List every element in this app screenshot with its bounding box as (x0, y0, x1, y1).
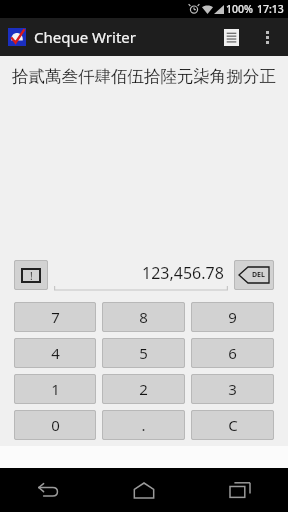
button[interactable]: 3 (191, 374, 274, 404)
staticText: 5 (139, 343, 148, 363)
staticText: 17:13 (257, 2, 284, 16)
staticText: 7 (51, 307, 60, 327)
button[interactable]: 4 (14, 338, 96, 368)
button[interactable]: More options (250, 20, 284, 54)
button[interactable]: 0 (14, 410, 96, 440)
button[interactable]: Recent apps (192, 468, 288, 512)
staticText: 3 (228, 379, 237, 399)
staticText: 1 (51, 379, 60, 399)
staticText: C (228, 415, 238, 435)
staticText: 9 (228, 307, 237, 327)
staticText: 4 (51, 343, 60, 363)
staticText: DEL (252, 270, 265, 280)
staticText: 拾貳萬叁仟肆佰伍拾陸元柒角捌分正 (12, 66, 276, 87)
staticText: 6 (228, 343, 237, 363)
button[interactable]: 6 (191, 338, 274, 368)
staticText: 0 (51, 415, 60, 435)
staticText: 100% (226, 2, 253, 16)
button[interactable]: Delete (234, 260, 274, 290)
button[interactable]: Info (14, 260, 48, 290)
button[interactable]: C (191, 410, 274, 440)
staticText: 8 (139, 307, 148, 327)
button[interactable]: 5 (102, 338, 185, 368)
button[interactable]: 2 (102, 374, 185, 404)
button[interactable]: 7 (14, 302, 96, 332)
button[interactable]: 9 (191, 302, 274, 332)
button[interactable]: 8 (102, 302, 185, 332)
staticText: Cheque Writer (34, 27, 137, 47)
button[interactable]: Records (212, 18, 250, 56)
staticText: 2 (139, 379, 148, 399)
staticText: . (141, 415, 146, 435)
button[interactable]: Back (0, 468, 96, 512)
staticText: 123,456.78 (142, 262, 224, 284)
button[interactable]: 1 (14, 374, 96, 404)
button[interactable]: Home (96, 468, 192, 512)
staticText: ! (30, 269, 33, 283)
button[interactable]: . (102, 410, 185, 440)
